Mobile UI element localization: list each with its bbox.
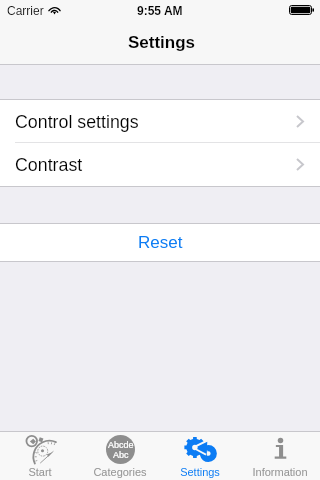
staticText: Abc — [113, 450, 129, 460]
button[interactable]: Abcde — [80, 431, 160, 480]
button[interactable]: Information — [240, 431, 320, 480]
staticText: Settings — [128, 33, 196, 52]
staticText: Information — [252, 466, 308, 478]
button[interactable]: Start — [0, 431, 80, 480]
staticText: Carrier — [7, 4, 44, 17]
staticText: Categories — [93, 466, 147, 478]
staticText: Reset — [138, 233, 183, 252]
button[interactable]: Settings — [160, 431, 240, 480]
staticText: 9:55 AM — [137, 4, 183, 17]
staticText: Abcde — [108, 440, 134, 450]
button[interactable]: Control settings — [0, 100, 320, 143]
staticText: Contrast — [15, 155, 83, 175]
button[interactable]: Contrast — [0, 143, 320, 186]
button[interactable]: Reset — [0, 224, 320, 261]
staticText: Start — [28, 466, 52, 478]
staticText: Control settings — [15, 112, 139, 132]
staticText: Settings — [180, 466, 220, 478]
